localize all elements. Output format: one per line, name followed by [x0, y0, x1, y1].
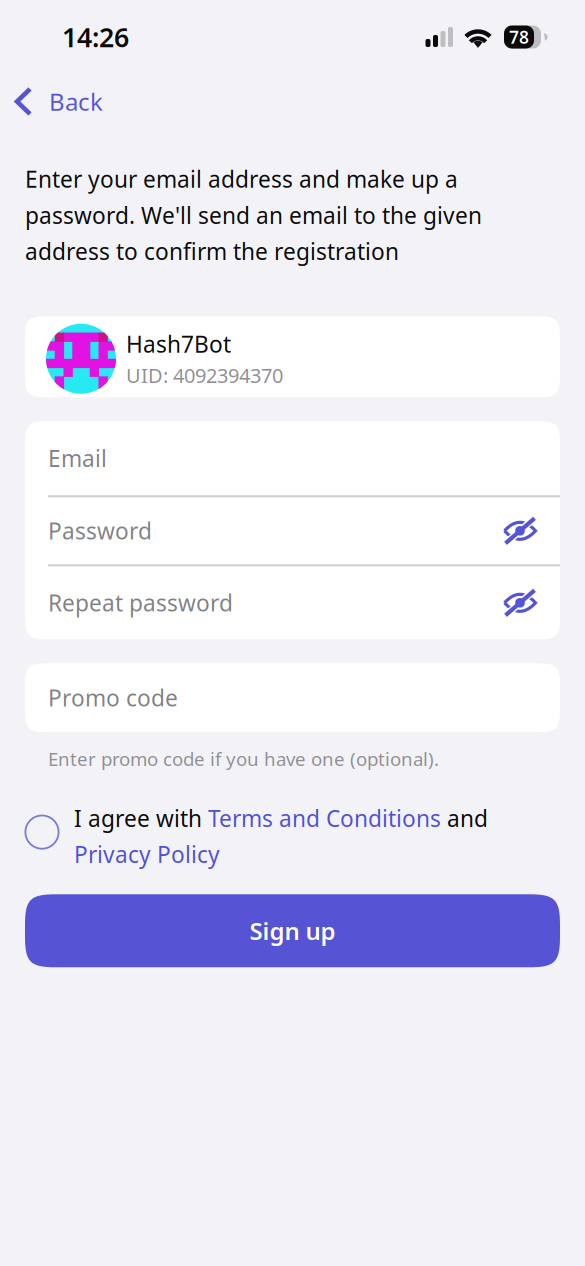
button[interactable]: Show password [489, 497, 551, 564]
button[interactable]: Back [0, 72, 119, 126]
staticText: UID: 4092394370 [126, 362, 283, 389]
staticText: Email [48, 443, 107, 473]
staticText: Enter promo code if you have one (option… [48, 746, 439, 771]
staticText: 14:26 [62, 19, 129, 55]
staticText: Sign up [249, 915, 335, 947]
button[interactable]: I agree to the terms [0, 803, 74, 856]
staticText: I agree with Terms and Conditions and Pr… [74, 803, 488, 869]
staticText: Enter your email address and make up a p… [25, 164, 482, 266]
staticText: Back [49, 86, 103, 117]
staticText: Repeat password [48, 588, 233, 618]
staticText: Promo code [48, 683, 178, 713]
button[interactable]: Sign up [0, 894, 585, 967]
button[interactable]: Show password [489, 566, 551, 639]
staticText: Hash7Bot [126, 329, 231, 359]
staticText: 78 [509, 25, 529, 48]
staticText: Password [48, 516, 152, 546]
